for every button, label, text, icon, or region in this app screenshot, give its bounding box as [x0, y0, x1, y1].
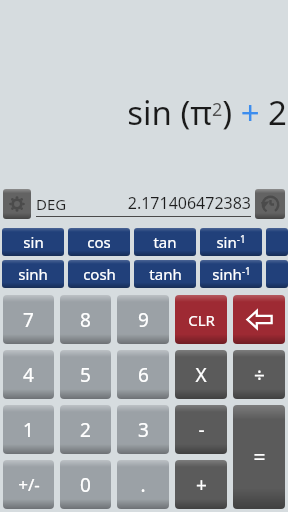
- button[interactable]: 8: [60, 295, 111, 344]
- staticText: +: [196, 472, 207, 498]
- button[interactable]: sinh-1: [200, 260, 262, 288]
- button[interactable]: sin: [2, 228, 64, 256]
- button[interactable]: -: [175, 405, 227, 454]
- staticText: cos: [87, 232, 111, 252]
- button[interactable]: 6: [117, 350, 169, 399]
- button[interactable]: Backspace: [233, 295, 285, 344]
- button[interactable]: [266, 260, 288, 288]
- button[interactable]: tanh: [134, 260, 196, 288]
- staticText: sin-1: [216, 232, 246, 252]
- staticText: DEG: [36, 194, 67, 214]
- button[interactable]: 9: [117, 295, 169, 344]
- staticText: +/-: [18, 473, 40, 496]
- staticText: 2: [80, 417, 91, 443]
- staticText: 5: [80, 362, 91, 388]
- staticText: ÷: [254, 362, 265, 388]
- button[interactable]: 4: [3, 350, 54, 399]
- button[interactable]: sin-1: [200, 228, 262, 256]
- button[interactable]: tan: [134, 228, 196, 256]
- staticText: cosh: [83, 264, 116, 284]
- staticText: sin (π2) + 2: [127, 90, 287, 135]
- staticText: 7: [23, 307, 34, 333]
- button[interactable]: cos: [68, 228, 130, 256]
- staticText: =: [253, 443, 266, 472]
- button[interactable]: 5: [60, 350, 111, 399]
- staticText: 1: [23, 417, 34, 443]
- staticText: sin: [23, 232, 44, 252]
- staticText: 0: [80, 472, 91, 498]
- button[interactable]: =: [233, 405, 285, 509]
- button[interactable]: [266, 228, 288, 256]
- button[interactable]: X: [175, 350, 227, 399]
- staticText: 3: [138, 417, 149, 443]
- staticText: 6: [138, 362, 149, 388]
- staticText: tan: [153, 232, 177, 252]
- button[interactable]: cosh: [68, 260, 130, 288]
- staticText: 2.171406472383: [67, 192, 251, 214]
- staticText: 8: [80, 307, 91, 333]
- button[interactable]: 2: [60, 405, 111, 454]
- button[interactable]: .: [117, 460, 169, 509]
- button[interactable]: Settings: [3, 189, 31, 219]
- button[interactable]: ÷: [233, 350, 285, 399]
- staticText: X: [195, 362, 207, 388]
- button[interactable]: +: [175, 460, 227, 509]
- staticText: 9: [138, 307, 149, 333]
- button[interactable]: CLR: [175, 295, 227, 344]
- button[interactable]: sinh: [2, 260, 64, 288]
- other: Backspace: [246, 310, 273, 329]
- staticText: CLR: [188, 310, 215, 330]
- button[interactable]: +/-: [3, 460, 54, 509]
- staticText: 4: [23, 362, 34, 388]
- staticText: .: [140, 472, 146, 498]
- staticText: -: [198, 417, 205, 443]
- button[interactable]: 7: [3, 295, 54, 344]
- staticText: sinh-1: [212, 264, 251, 284]
- staticText: sinh: [18, 264, 48, 284]
- button[interactable]: 1: [3, 405, 54, 454]
- button[interactable]: 3: [117, 405, 169, 454]
- button[interactable]: 0: [60, 460, 111, 509]
- button[interactable]: History: [255, 189, 285, 219]
- staticText: tanh: [149, 264, 182, 284]
